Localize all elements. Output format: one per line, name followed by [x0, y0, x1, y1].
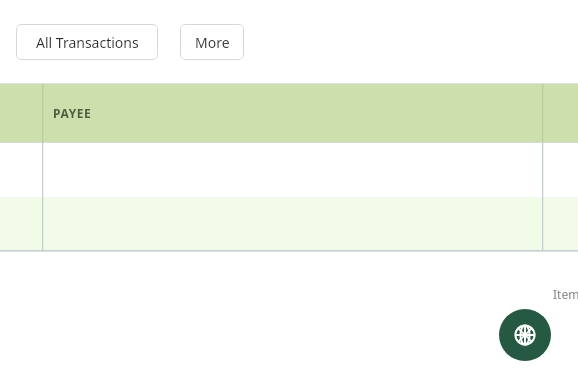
button[interactable]: PAYEE — [42, 84, 542, 142]
staticText: More — [195, 33, 230, 52]
button[interactable]: More — [180, 24, 244, 60]
button[interactable]: Open help — [499, 309, 551, 361]
staticText: All Transactions — [36, 33, 139, 52]
staticText: PAYEE — [53, 105, 92, 121]
staticText: Items — [553, 286, 578, 302]
button[interactable]: All Transactions — [16, 24, 158, 60]
